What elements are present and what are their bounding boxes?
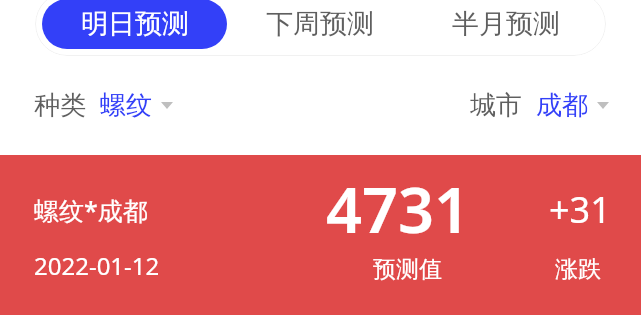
- staticText: 4731: [326, 166, 471, 252]
- button[interactable]: 半月预测: [413, 0, 599, 49]
- staticText: 城市: [470, 89, 522, 122]
- staticText: 螺纹*成都: [34, 193, 148, 227]
- staticText: 预测值: [373, 255, 442, 284]
- button[interactable]: 城市 成都: [470, 89, 609, 122]
- button[interactable]: 种类 螺纹: [34, 89, 173, 122]
- staticText: 涨跌: [555, 255, 601, 284]
- staticText: 2022-01-12: [34, 249, 160, 282]
- staticText: 螺纹: [100, 89, 152, 122]
- staticText: 成都: [536, 89, 588, 122]
- staticText: 种类: [34, 89, 86, 122]
- staticText: 半月预测: [452, 7, 560, 41]
- staticText: +31: [549, 185, 611, 234]
- staticText: 明日预测: [81, 7, 189, 41]
- button[interactable]: 下周预测: [227, 0, 413, 49]
- staticText: 下周预测: [266, 7, 374, 41]
- button[interactable]: 螺纹*成都: [0, 155, 641, 315]
- button[interactable]: 明日预测: [42, 0, 227, 49]
